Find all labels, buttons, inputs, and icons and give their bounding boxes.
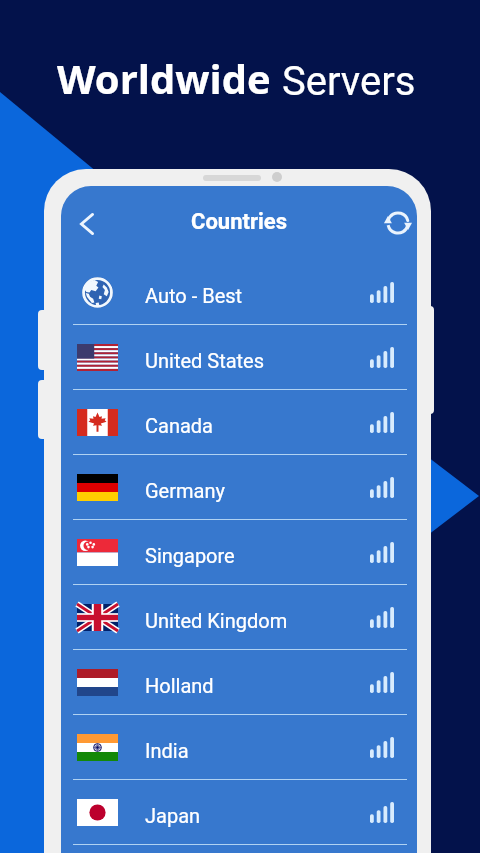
staticText: United States [145,349,265,372]
staticText: Canada [145,414,213,437]
button[interactable]: Canada [61,390,417,455]
button[interactable]: Singapore [61,520,417,585]
button[interactable]: Japan [61,780,417,845]
staticText: Servers [282,58,416,105]
staticText: Worldwide [57,51,282,105]
button[interactable]: United States [61,325,417,390]
button[interactable]: Auto - Best [61,260,417,325]
staticText: Germany [145,479,225,502]
staticText: Auto - Best [145,284,243,307]
staticText: United Kingdom [145,609,288,632]
staticText: Singapore [145,544,235,567]
staticText: Holland [145,674,214,697]
staticText: Japan [145,804,201,827]
button[interactable]: Germany [61,455,417,520]
staticText: India [145,739,189,762]
staticText: Countries [191,209,288,235]
button[interactable]: United Kingdom [61,585,417,650]
button[interactable]: Refresh [376,201,417,245]
button[interactable]: India [61,715,417,780]
button[interactable]: Holland [61,650,417,715]
button[interactable]: Back [64,201,109,246]
